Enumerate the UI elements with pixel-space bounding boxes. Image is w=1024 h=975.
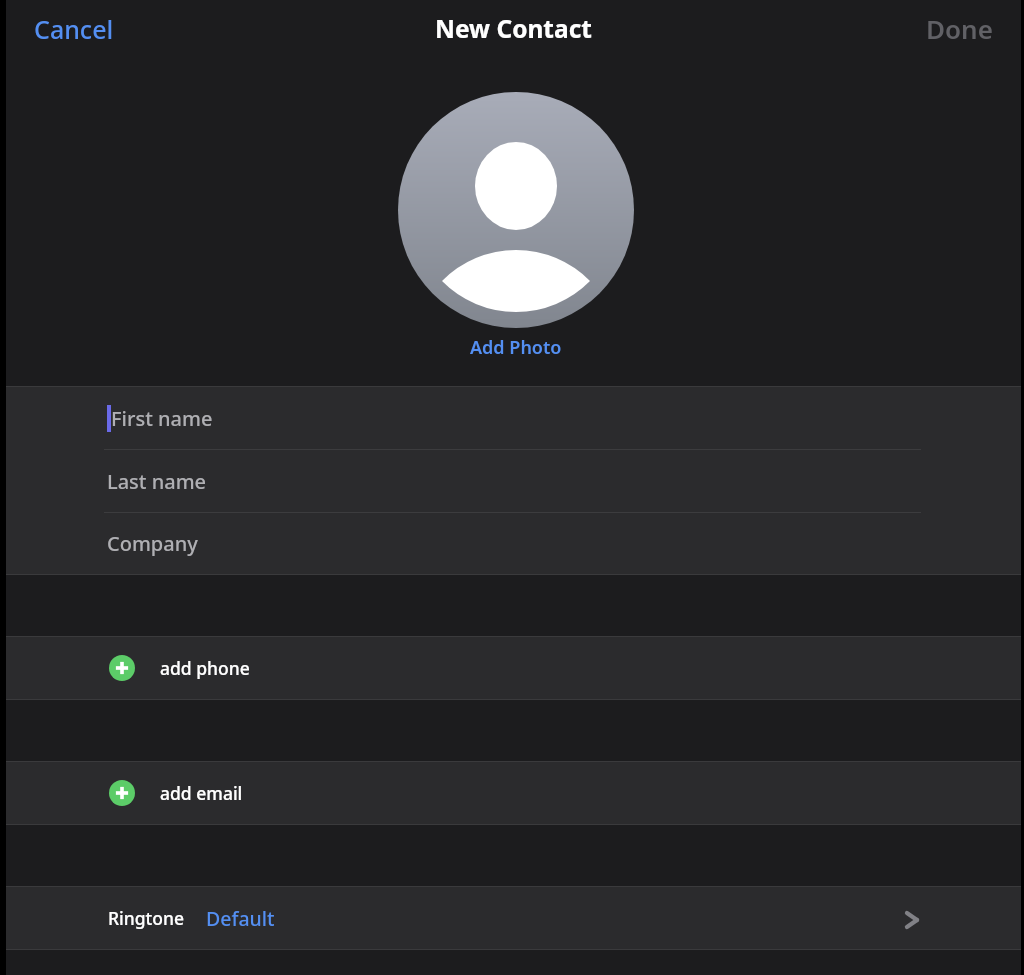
button[interactable]: Ringtone xyxy=(6,887,1021,949)
staticText: New Contact xyxy=(435,12,592,45)
button[interactable]: First name xyxy=(6,387,1021,449)
other: Choose ringtone xyxy=(901,909,923,931)
button[interactable]: Add Photo xyxy=(458,327,574,368)
button[interactable]: Done xyxy=(902,1,1021,56)
button[interactable]: Last name xyxy=(6,450,1021,512)
staticText: Ringtone xyxy=(108,906,185,930)
staticText: Company xyxy=(107,530,198,557)
button[interactable]: add phone xyxy=(6,637,1021,699)
staticText: Default xyxy=(206,905,275,932)
staticText: Done xyxy=(926,11,993,46)
button[interactable]: Company xyxy=(6,513,1021,574)
button[interactable]: Add Photo xyxy=(398,92,634,328)
staticText: Last name xyxy=(107,468,207,495)
staticText: Add Photo xyxy=(470,335,562,360)
button[interactable]: add email xyxy=(6,762,1021,824)
staticText: First name xyxy=(111,405,213,432)
staticText: add phone xyxy=(160,656,250,680)
button[interactable]: Cancel xyxy=(6,2,142,56)
staticText: add email xyxy=(160,781,243,805)
staticText: Cancel xyxy=(34,12,114,46)
